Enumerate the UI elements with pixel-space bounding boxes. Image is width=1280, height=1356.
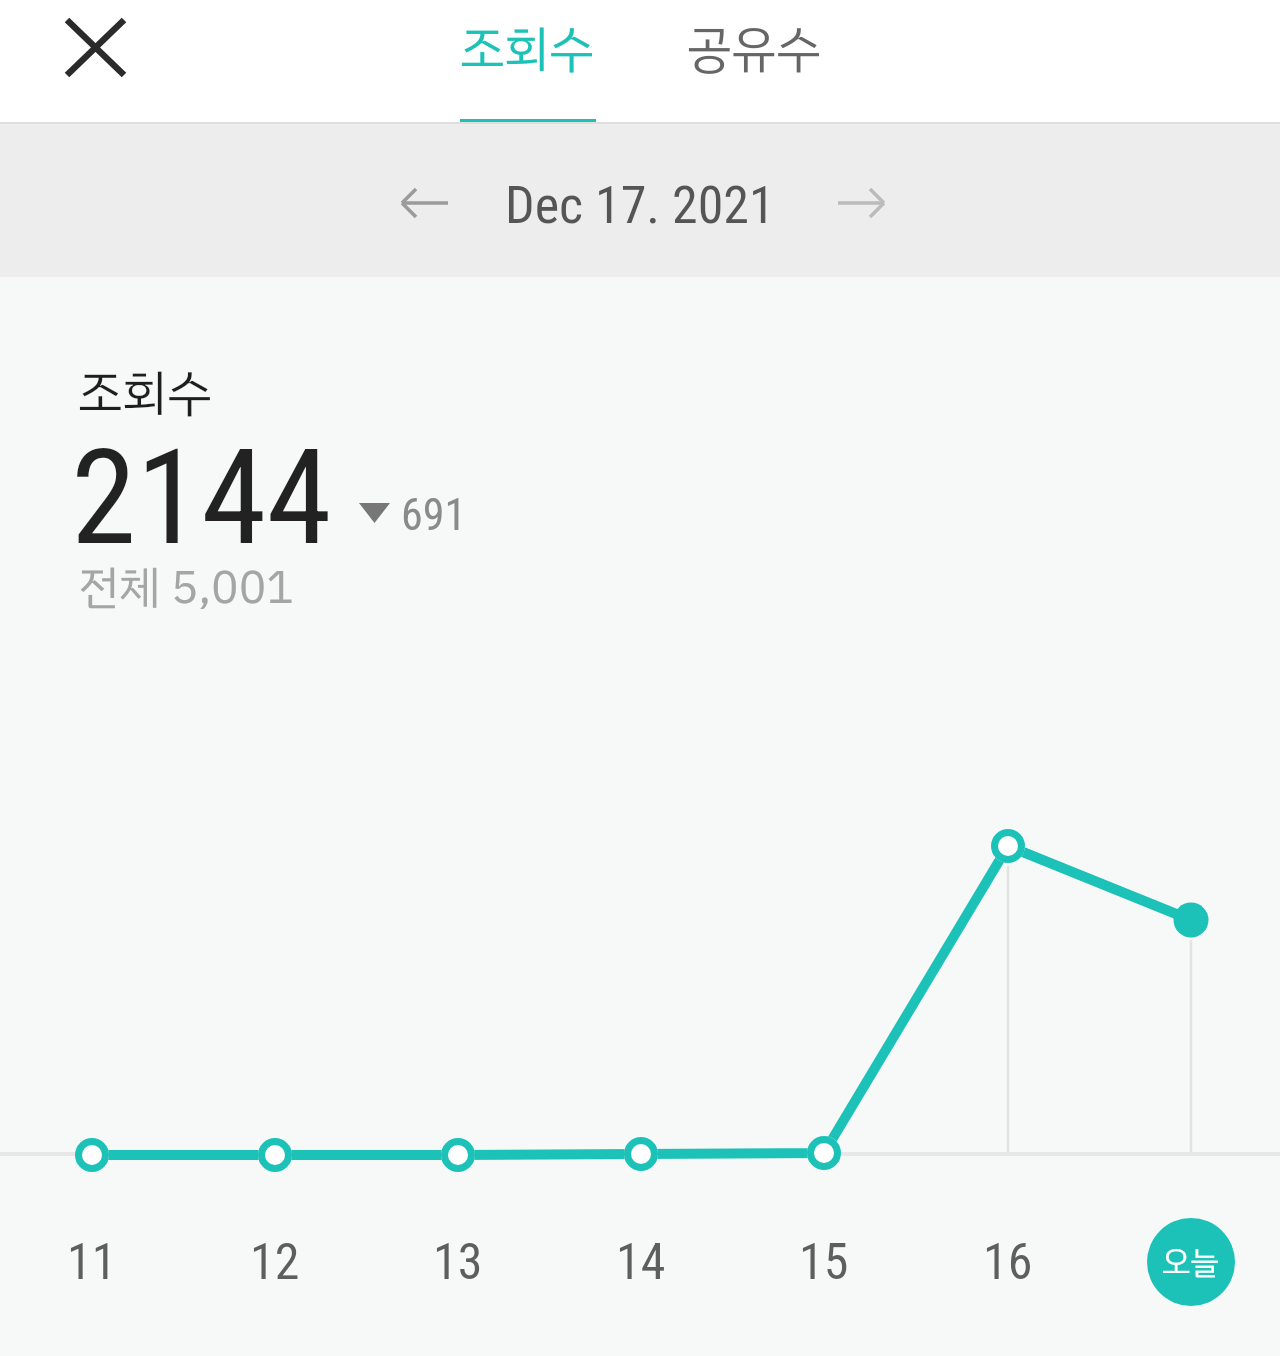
staticText: 691 — [401, 489, 467, 541]
staticText: 공유수 — [687, 12, 821, 87]
staticText: 15 — [799, 1233, 849, 1292]
button[interactable]: 공유수 — [674, 0, 834, 98]
staticText: 13 — [433, 1233, 483, 1292]
button[interactable]: 조회수 — [447, 0, 607, 98]
button[interactable]: 오늘 — [1147, 1218, 1235, 1306]
staticText: 오늘 — [1162, 1238, 1220, 1286]
button[interactable] — [55, 8, 135, 88]
staticText: 2144 — [71, 421, 332, 571]
staticText: 전체 5,001 — [78, 553, 294, 613]
staticText: 16 — [983, 1233, 1033, 1292]
staticText: 조회수 — [78, 356, 212, 418]
staticText: Dec 17. 2021 — [505, 175, 775, 236]
button[interactable] — [390, 175, 460, 231]
staticText: 14 — [616, 1233, 666, 1292]
staticText: 조회수 — [460, 12, 594, 87]
staticText: 11 — [67, 1233, 117, 1292]
button[interactable] — [826, 175, 896, 231]
staticText: 12 — [250, 1233, 300, 1292]
